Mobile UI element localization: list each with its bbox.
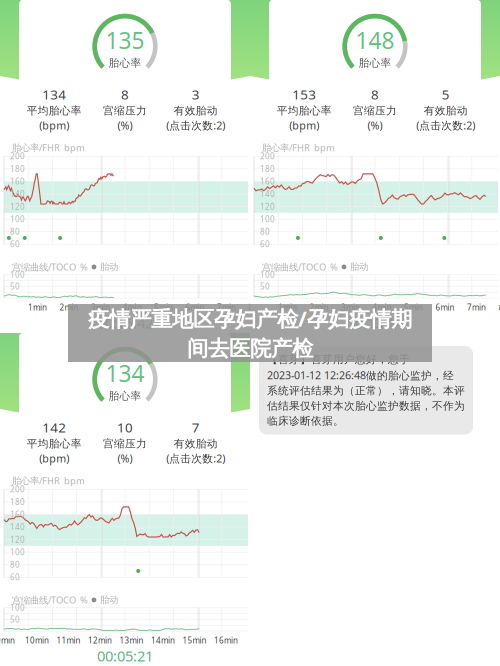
staticText: 胎动 — [100, 261, 118, 273]
staticText: 50 — [10, 281, 20, 292]
staticText: 120 — [260, 201, 275, 212]
staticText: 10 — [117, 418, 133, 436]
staticText: 7 — [192, 418, 200, 436]
staticText: 200 — [260, 151, 275, 161]
staticText: 有效胎动 — [174, 437, 218, 450]
staticText: (点击次数:2) — [416, 118, 475, 132]
staticText: 5min — [404, 302, 423, 313]
staticText: 胎心率 — [108, 389, 141, 402]
staticText: 100 — [10, 214, 25, 224]
staticText: 4min — [372, 302, 391, 313]
staticText: 胎心率/FHR bpm — [12, 474, 85, 487]
staticText: 5 — [442, 85, 450, 103]
staticText: (%) — [367, 118, 382, 132]
staticText: 60 — [10, 572, 20, 582]
staticText: 11min — [56, 635, 80, 646]
staticText: 平均胎心率 — [27, 437, 82, 450]
staticText: 宫缩压力 — [103, 437, 147, 450]
staticText: 100 — [260, 214, 275, 224]
staticText: 6min — [185, 302, 204, 313]
staticText: 142 — [42, 418, 66, 436]
staticText: 15min — [182, 635, 206, 646]
staticText: 平均胎心率 — [27, 104, 82, 117]
staticText: 7min — [217, 302, 236, 313]
staticText: 00:05:21 — [97, 646, 153, 666]
staticText: 9min — [0, 635, 15, 646]
staticText: 2023-01-12 12:26:48做的胎心监护，经 — [267, 368, 454, 382]
staticText: 14min — [151, 635, 175, 646]
staticText: 160 — [10, 509, 25, 520]
staticText: 【喜芽】喜芽用户您好，您于 — [267, 353, 410, 366]
staticText: (点击次数:2) — [166, 118, 225, 132]
staticText: 8 — [121, 85, 129, 103]
staticText: (bpm) — [39, 118, 69, 132]
staticText: 120 — [10, 201, 25, 212]
staticText: 胎心率/FHR bpm — [12, 141, 85, 154]
staticText: 50 — [260, 281, 270, 292]
staticText: 8min — [498, 302, 500, 313]
staticText: 100 — [10, 602, 25, 613]
staticText: 140 — [10, 189, 25, 199]
staticText: 50 — [10, 614, 20, 625]
staticText: 系统评估结果为（正常），请知晓。本评 — [267, 384, 465, 397]
staticText: 3min — [91, 302, 110, 313]
staticText: 胎动 — [100, 594, 118, 606]
staticText: 宫缩压力 — [353, 104, 397, 117]
staticText: 平均胎心率 — [277, 104, 332, 117]
staticText: 12min — [88, 635, 112, 646]
staticText: 胎心率/FHR bpm — [262, 141, 335, 154]
staticText: 胎心率 — [358, 56, 391, 69]
staticText: 估结果仅针对本次胎心监护数据，不作为 — [267, 399, 465, 412]
staticText: 134 — [42, 85, 66, 103]
staticText: 134 — [105, 358, 144, 388]
staticText: 4min — [122, 302, 141, 313]
staticText: 148 — [355, 25, 394, 55]
staticText: 宫缩曲线/TOCO % — [12, 261, 88, 273]
staticText: (bpm) — [289, 118, 319, 132]
staticText: 7min — [467, 302, 486, 313]
staticText: 80 — [10, 226, 20, 237]
staticText: 临床诊断依据。 — [267, 414, 344, 428]
staticText: 200 — [10, 151, 25, 161]
staticText: 60 — [260, 239, 270, 249]
staticText: 200 — [10, 484, 25, 494]
staticText: 宫缩曲线/TOCO % — [262, 261, 338, 273]
staticText: 胎心率 — [108, 56, 141, 69]
staticText: 间去医院产检 — [187, 336, 313, 362]
staticText: 16min — [214, 635, 238, 646]
staticText: 153 — [292, 85, 316, 103]
staticText: 13min — [119, 635, 143, 646]
staticText: 胎动 — [350, 261, 368, 273]
staticText: 2min — [59, 302, 78, 313]
staticText: (%) — [117, 118, 132, 132]
staticText: 100 — [260, 269, 275, 280]
staticText: 140 — [260, 189, 275, 199]
staticText: 疫情严重地区孕妇产检/孕妇疫情期 — [88, 304, 412, 332]
staticText: 160 — [260, 176, 275, 187]
staticText: 3 — [192, 85, 200, 103]
staticText: 10min — [25, 635, 49, 646]
staticText: 180 — [10, 163, 25, 174]
staticText: (%) — [117, 451, 132, 465]
staticText: 5min — [154, 302, 173, 313]
staticText: 8min — [248, 302, 267, 313]
staticText: (点击次数:2) — [166, 451, 225, 465]
staticText: 160 — [10, 176, 25, 187]
staticText: 宫缩压力 — [103, 104, 147, 117]
staticText: 有效胎动 — [174, 104, 218, 117]
staticText: 00:13:14 — [347, 313, 403, 333]
staticText: 1min — [278, 302, 297, 313]
staticText: 180 — [10, 496, 25, 507]
staticText: 1min — [28, 302, 47, 313]
staticText: 宫缩曲线/TOCO % — [12, 594, 88, 606]
staticText: 80 — [10, 559, 20, 570]
staticText: 135 — [105, 25, 144, 55]
staticText: 3min — [341, 302, 360, 313]
staticText: 6min — [435, 302, 454, 313]
staticText: 180 — [260, 163, 275, 174]
staticText: 100 — [10, 547, 25, 557]
staticText: 2min — [309, 302, 328, 313]
staticText: 100 — [10, 269, 25, 280]
staticText: 8 — [371, 85, 379, 103]
staticText: 有效胎动 — [424, 104, 468, 117]
